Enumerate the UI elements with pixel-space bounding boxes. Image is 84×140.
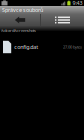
staticText: 9:43 (72, 0, 82, 7)
button[interactable]: Back (0, 14, 40, 26)
staticText: /sdcard/screenshots (1, 28, 36, 33)
staticText: config.dat (14, 43, 38, 51)
staticText: 27.00 bytes (63, 44, 82, 50)
button[interactable]: config.dat (0, 40, 84, 54)
button[interactable]: List view (41, 14, 84, 26)
staticText: Správce souborů (2, 6, 43, 14)
